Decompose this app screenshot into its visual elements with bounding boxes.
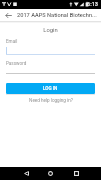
staticText: Password [6,61,27,66]
staticText: Need help logging in? [29,98,73,103]
button[interactable]: LOG IN [6,83,95,94]
button[interactable]: Need help logging in? [0,98,101,103]
staticText: 6:13 [87,1,99,8]
button[interactable]: Back [19,168,34,178]
button[interactable]: Back [2,9,14,21]
staticText: Email [6,39,18,44]
staticText: 2017 AAPS National Biotechn... [17,12,97,19]
button[interactable]: Home [43,168,58,178]
staticText: LOG IN [43,86,58,91]
button[interactable]: Recent apps [69,168,84,178]
staticText: Login [0,27,101,34]
